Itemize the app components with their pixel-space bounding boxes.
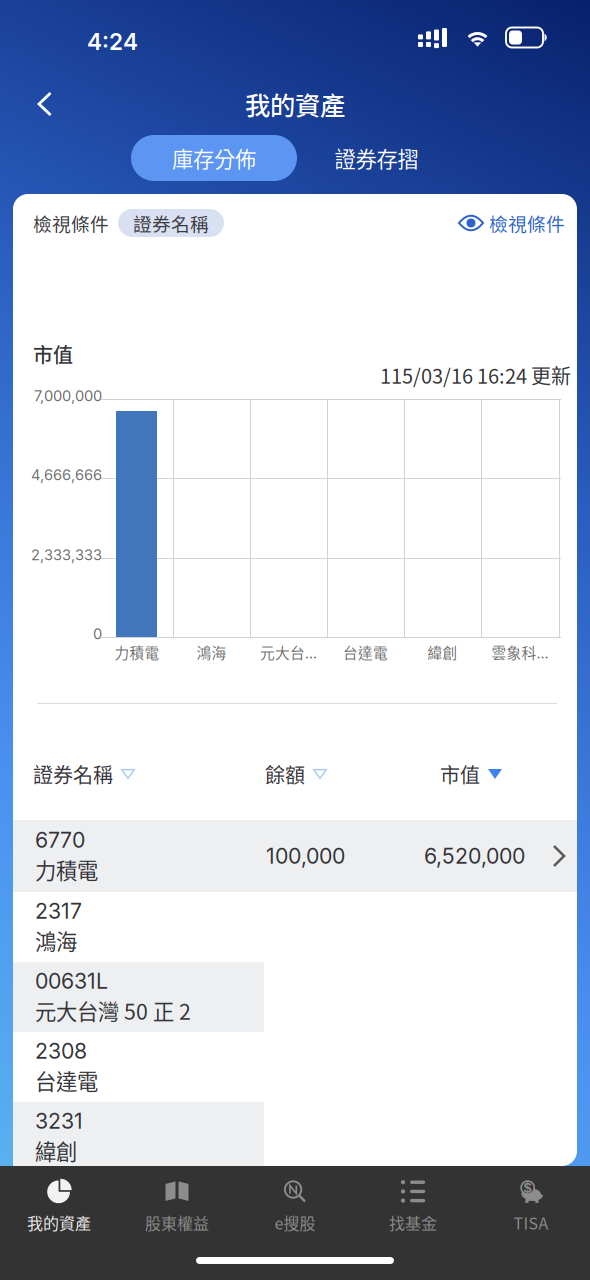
staticText: 緯創	[427, 641, 457, 663]
staticText: 7,000,000	[34, 387, 102, 405]
staticText: 元大台灣 50 正 2	[35, 995, 191, 1026]
staticText: 4:24	[87, 28, 138, 55]
staticText: 6770	[35, 827, 85, 853]
staticText: 餘額	[265, 759, 305, 788]
staticText: 力積電	[114, 641, 159, 663]
button[interactable]: e搜股	[236, 1176, 354, 1236]
staticText: 檢視條件	[489, 209, 565, 236]
staticText: 庫存分佈	[172, 143, 256, 173]
staticText: 2,333,333	[31, 546, 102, 564]
staticText: 鴻海	[35, 925, 77, 956]
button[interactable]: 餘額	[265, 760, 355, 788]
staticText: 115/03/16 16:24 更新	[380, 360, 571, 389]
staticText: 市值	[440, 759, 480, 788]
staticText: 6,520,000	[424, 843, 525, 869]
button[interactable]: 6770	[13, 820, 577, 892]
staticText: 2308	[35, 1038, 87, 1064]
staticText: 台達電	[343, 641, 388, 663]
button[interactable]: 2308	[13, 1032, 577, 1102]
staticText: 2317	[35, 898, 82, 924]
button[interactable]: 檢視條件	[453, 208, 565, 238]
staticText: e搜股	[274, 1211, 315, 1234]
staticText: 鴻海	[196, 641, 226, 663]
staticText: 台達電	[35, 1065, 98, 1096]
staticText: 市值	[33, 339, 73, 368]
button[interactable]: 2317	[13, 892, 577, 962]
staticText: 100,000	[266, 843, 345, 869]
staticText: 檢視條件	[33, 209, 109, 236]
button[interactable]: 3231	[13, 1102, 577, 1172]
staticText: 0	[93, 625, 102, 643]
staticText: $	[523, 1180, 532, 1196]
staticText: 找基金	[389, 1211, 437, 1234]
button[interactable]: $	[472, 1176, 590, 1236]
button[interactable]: 庫存分佈	[131, 135, 297, 181]
staticText: 緯創	[35, 1135, 77, 1166]
staticText: 00631L	[35, 968, 108, 994]
staticText: 證券名稱	[133, 209, 209, 236]
staticText: 4,666,666	[31, 466, 102, 484]
button[interactable]: 市值	[440, 760, 530, 788]
button[interactable]: 證券存摺	[305, 135, 448, 181]
staticText: 我的資產	[27, 1211, 91, 1234]
button[interactable]: 找基金	[354, 1176, 472, 1236]
staticText: 元大台...	[260, 641, 317, 663]
staticText: 股東權益	[145, 1211, 209, 1234]
button[interactable]: 00631L	[13, 962, 577, 1032]
staticText: TISA	[513, 1211, 548, 1234]
staticText: 證券名稱	[33, 759, 113, 788]
staticText: 雲象科...	[491, 641, 548, 663]
button[interactable]: 股東權益	[118, 1176, 236, 1236]
staticText: 我的資產	[245, 86, 345, 122]
staticText: 力積電	[35, 854, 98, 885]
staticText: 證券存摺	[334, 143, 418, 173]
button[interactable]: 證券名稱	[33, 760, 153, 788]
staticText: 3231	[35, 1108, 83, 1134]
button[interactable]: 我的資產	[0, 1176, 118, 1236]
button[interactable]: Back	[10, 80, 80, 128]
